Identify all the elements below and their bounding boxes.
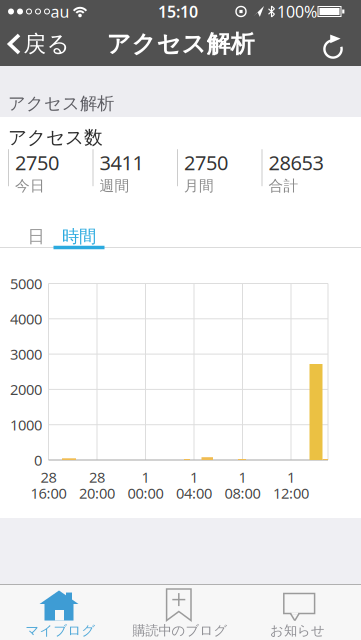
staticText: 1 [238, 467, 246, 487]
staticText: 日 [27, 226, 44, 247]
button[interactable]: 時間 [62, 226, 96, 247]
button[interactable]: マイブログ [15, 586, 105, 640]
staticText: 今日 [15, 177, 45, 195]
staticText: 04:00 [176, 483, 212, 503]
staticText: 28 [89, 467, 105, 487]
staticText: 購読中のブログ [132, 622, 227, 639]
button[interactable]: 購読中のブログ [130, 586, 230, 640]
staticText: 2750 [15, 149, 59, 176]
staticText: 20:00 [79, 483, 115, 503]
staticText: 3000 [10, 344, 42, 364]
staticText: 3411 [99, 149, 143, 176]
staticText: 1 [287, 467, 295, 487]
staticText: 1 [190, 467, 198, 487]
staticText: マイブログ [25, 622, 95, 639]
staticText: 16:00 [30, 483, 66, 503]
staticText: お知らせ [270, 622, 325, 639]
staticText: アクセス数 [8, 126, 103, 149]
staticText: 12:00 [273, 483, 309, 503]
staticText: 4000 [10, 309, 42, 329]
staticText: 2000 [10, 380, 42, 399]
staticText: 1 [141, 467, 149, 487]
button[interactable]: お知らせ [257, 586, 337, 640]
staticText: 28 [40, 467, 56, 487]
staticText: 08:00 [224, 483, 260, 503]
staticText: 時間 [62, 226, 96, 247]
staticText: 週間 [99, 177, 129, 195]
staticText: アクセス解析 [8, 93, 114, 114]
staticText: 100% [277, 1, 317, 22]
button[interactable] [320, 22, 356, 66]
staticText: アクセス解析 [106, 29, 254, 59]
staticText: 0 [34, 450, 42, 470]
staticText: au [50, 1, 69, 22]
staticText: 28653 [268, 149, 323, 176]
staticText: 月間 [184, 177, 214, 195]
staticText: 15:10 [158, 1, 198, 22]
staticText: 戻る [23, 30, 69, 58]
staticText: 00:00 [127, 483, 163, 503]
button[interactable]: 戻る [7, 22, 67, 66]
staticText: 1000 [10, 415, 42, 434]
button[interactable]: 日 [27, 226, 44, 247]
staticText: 合計 [268, 177, 298, 195]
staticText: 5000 [10, 274, 42, 293]
staticText: 2750 [184, 149, 228, 176]
